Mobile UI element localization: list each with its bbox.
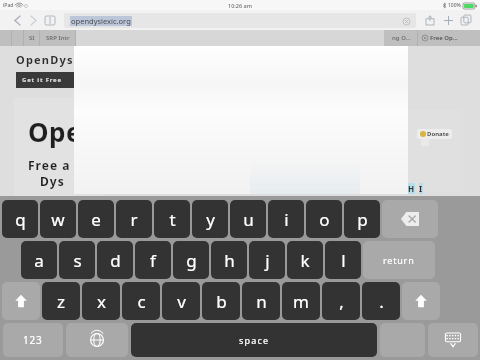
- button[interactable]: i: [268, 200, 304, 238]
- button[interactable]: j: [249, 241, 285, 279]
- button[interactable]: Forward: [25, 11, 41, 29]
- staticText: SRP Intr: [46, 34, 70, 42]
- button[interactable]: z: [42, 282, 80, 320]
- button[interactable]: w: [40, 200, 76, 238]
- button[interactable]: s: [59, 241, 95, 279]
- staticText: t: [169, 208, 176, 231]
- button[interactable]: r: [116, 200, 152, 238]
- staticText: w: [51, 208, 65, 231]
- staticText: k: [300, 249, 310, 272]
- button[interactable]: Shift: [402, 282, 440, 320]
- button[interactable]: SRP Intr: [40, 30, 76, 46]
- staticText: b: [216, 290, 227, 313]
- button[interactable]: .: [362, 282, 400, 320]
- button[interactable]: g: [173, 241, 209, 279]
- button[interactable]: x: [82, 282, 120, 320]
- staticText: y: [206, 208, 215, 231]
- staticText: .: [379, 290, 384, 313]
- button[interactable]: l: [325, 241, 361, 279]
- staticText: u: [243, 208, 254, 231]
- button[interactable]: Back: [9, 11, 25, 29]
- staticText: c: [137, 290, 146, 313]
- staticText: e: [91, 208, 101, 231]
- staticText: ng O...: [392, 34, 411, 42]
- staticText: o: [319, 208, 330, 231]
- button[interactable]: o: [306, 200, 342, 238]
- staticText: return: [383, 254, 415, 266]
- staticText: iPad: [3, 2, 14, 9]
- button[interactable]: Share: [421, 11, 439, 29]
- button[interactable]: d: [97, 241, 133, 279]
- button[interactable]: 123: [3, 323, 63, 357]
- button[interactable]: a: [21, 241, 57, 279]
- button[interactable]: ng O...: [384, 30, 418, 46]
- button[interactable]: return: [363, 241, 435, 279]
- staticText: h: [224, 249, 235, 272]
- button[interactable]: y: [192, 200, 228, 238]
- button[interactable]: c: [122, 282, 160, 320]
- button[interactable]: p: [344, 200, 380, 238]
- staticText: z: [57, 290, 65, 313]
- button[interactable]: n: [242, 282, 280, 320]
- staticText: g: [186, 249, 197, 272]
- staticText: Donate: [427, 130, 449, 138]
- button[interactable]: Hide keyboard: [428, 323, 478, 357]
- staticText: 123: [23, 333, 43, 347]
- staticText: 100%: [448, 2, 461, 9]
- staticText: space: [239, 334, 270, 346]
- button[interactable]: [0, 30, 12, 46]
- staticText: q: [15, 208, 26, 231]
- staticText: p: [357, 208, 368, 231]
- button[interactable]: SI: [24, 30, 40, 46]
- button[interactable]: k: [287, 241, 323, 279]
- staticText: v: [177, 290, 186, 313]
- staticText: n: [256, 290, 267, 313]
- staticText: Get it Free: [22, 76, 62, 84]
- button[interactable]: [12, 30, 24, 46]
- button[interactable]: Bookmarks: [41, 11, 59, 29]
- staticText: Ope: [28, 114, 83, 149]
- staticText: x: [97, 290, 106, 313]
- staticText: s: [73, 249, 82, 272]
- button[interactable]: ,: [322, 282, 360, 320]
- button[interactable]: t: [154, 200, 190, 238]
- staticText: l: [341, 249, 346, 272]
- button[interactable]: q: [2, 200, 38, 238]
- button[interactable]: h: [211, 241, 247, 279]
- staticText: I: [419, 183, 423, 194]
- button[interactable]: opendyslexic.org: [64, 13, 416, 28]
- button[interactable]: Switch keyboard: [66, 323, 128, 357]
- button[interactable]: m: [282, 282, 320, 320]
- staticText: r: [130, 208, 138, 231]
- button[interactable]: Shift: [2, 282, 40, 320]
- staticText: SI: [29, 34, 35, 42]
- button[interactable]: space: [131, 323, 377, 357]
- button[interactable]: Clear: [401, 16, 411, 26]
- button[interactable]: u: [230, 200, 266, 238]
- staticText: Free Op...: [430, 34, 458, 42]
- staticText: ,: [339, 290, 344, 313]
- button[interactable]: b: [202, 282, 240, 320]
- staticText: 10:26 am: [228, 2, 252, 9]
- button[interactable]: Free Op...: [418, 30, 480, 46]
- staticText: m: [293, 290, 309, 313]
- staticText: H: [408, 183, 415, 194]
- button[interactable]: v: [162, 282, 200, 320]
- staticText: opendyslexic.org: [71, 16, 131, 26]
- staticText: Dys: [40, 173, 65, 189]
- button[interactable]: New tab: [439, 11, 457, 29]
- staticText: d: [110, 249, 121, 272]
- button[interactable]: f: [135, 241, 171, 279]
- button[interactable]: Backspace: [382, 200, 438, 238]
- staticText: i: [284, 208, 289, 231]
- staticText: Free a: [28, 157, 71, 173]
- button[interactable]: Donate: [417, 129, 452, 139]
- staticText: OpenDys: [16, 52, 74, 67]
- button[interactable]: Get it Free: [16, 72, 86, 88]
- button[interactable]: Tabs: [457, 11, 475, 29]
- staticText: a: [34, 249, 44, 272]
- button[interactable]: e: [78, 200, 114, 238]
- staticText: f: [150, 249, 156, 272]
